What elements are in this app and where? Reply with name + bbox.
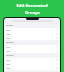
button[interactable]: Item bbox=[5, 28, 59, 32]
staticText: Item bbox=[6, 67, 11, 70]
staticText: Groups bbox=[25, 10, 40, 16]
button[interactable]: Item bbox=[5, 45, 59, 49]
staticText: Item bbox=[6, 29, 11, 32]
button[interactable]: Item bbox=[5, 32, 59, 36]
button[interactable]: Item bbox=[5, 49, 59, 53]
staticText: Item bbox=[6, 59, 11, 62]
staticText: Group 1 bbox=[6, 24, 15, 27]
button[interactable]: Item bbox=[5, 66, 59, 70]
button[interactable]: Item bbox=[5, 62, 59, 66]
staticText: Group 3 bbox=[6, 54, 15, 57]
staticText: Item bbox=[6, 46, 11, 49]
button[interactable]: Group 1 bbox=[6, 24, 58, 27]
staticText: Edit Generated bbox=[16, 3, 48, 9]
staticText: Item bbox=[6, 37, 11, 40]
button[interactable]: Item bbox=[5, 36, 59, 40]
staticText: Group 2 bbox=[6, 41, 15, 44]
staticText: Item bbox=[6, 63, 11, 66]
button[interactable]: Group 3 bbox=[6, 54, 58, 57]
button[interactable]: Group 2 bbox=[6, 41, 58, 44]
button[interactable]: Item bbox=[5, 58, 59, 62]
staticText: Item bbox=[6, 50, 11, 53]
staticText: Item bbox=[6, 33, 11, 36]
